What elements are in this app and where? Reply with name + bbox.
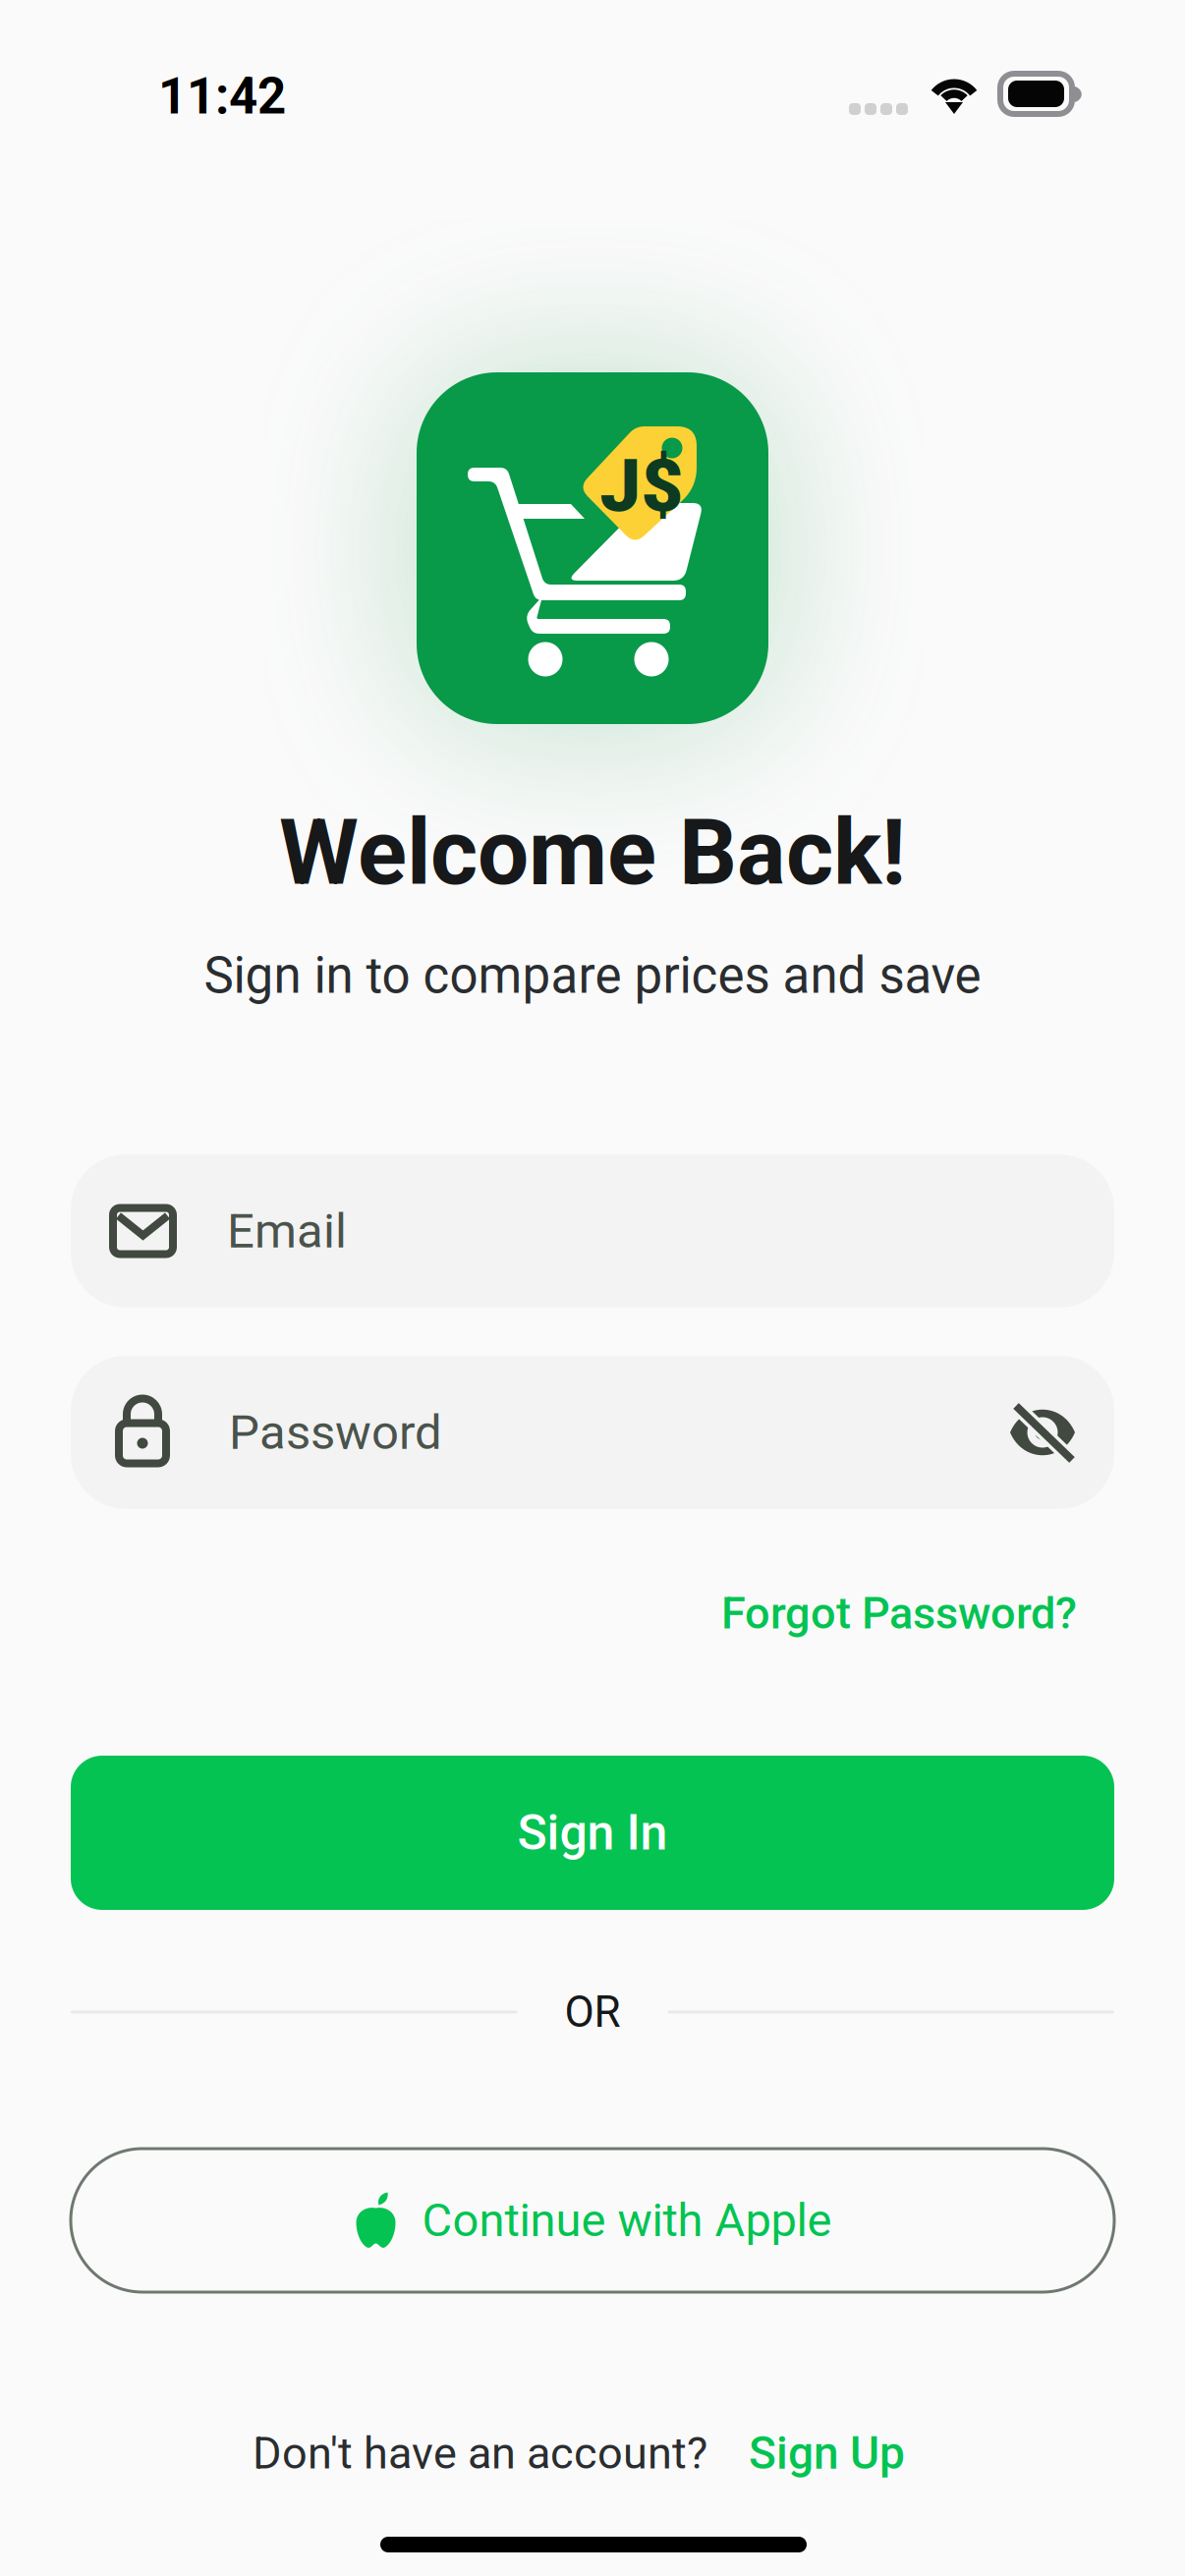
staticText: 11:42 bbox=[158, 67, 286, 126]
button[interactable]: Sign Up bbox=[707, 2427, 932, 2480]
button[interactable]: Forgot Password? bbox=[721, 1587, 1114, 1639]
staticText: Password bbox=[229, 1404, 442, 1461]
button[interactable]: Sign In bbox=[71, 1756, 1114, 1910]
staticText: J$ bbox=[600, 444, 683, 529]
staticText: Continue with Apple bbox=[422, 2193, 832, 2247]
staticText: Forgot Password? bbox=[721, 1587, 1077, 1639]
staticText: Sign in to compare prices and save bbox=[204, 946, 981, 1005]
staticText: Email bbox=[227, 1203, 347, 1259]
staticText: Don't have an account? bbox=[253, 2427, 707, 2479]
staticText: Welcome Back! bbox=[279, 800, 906, 906]
staticText: Sign Up bbox=[749, 2427, 905, 2480]
button[interactable]: Continue with Apple bbox=[71, 2149, 1114, 2292]
button[interactable]: Show password bbox=[1009, 1403, 1114, 1462]
staticText: Sign In bbox=[517, 1804, 668, 1862]
staticText: OR bbox=[564, 1987, 621, 2037]
